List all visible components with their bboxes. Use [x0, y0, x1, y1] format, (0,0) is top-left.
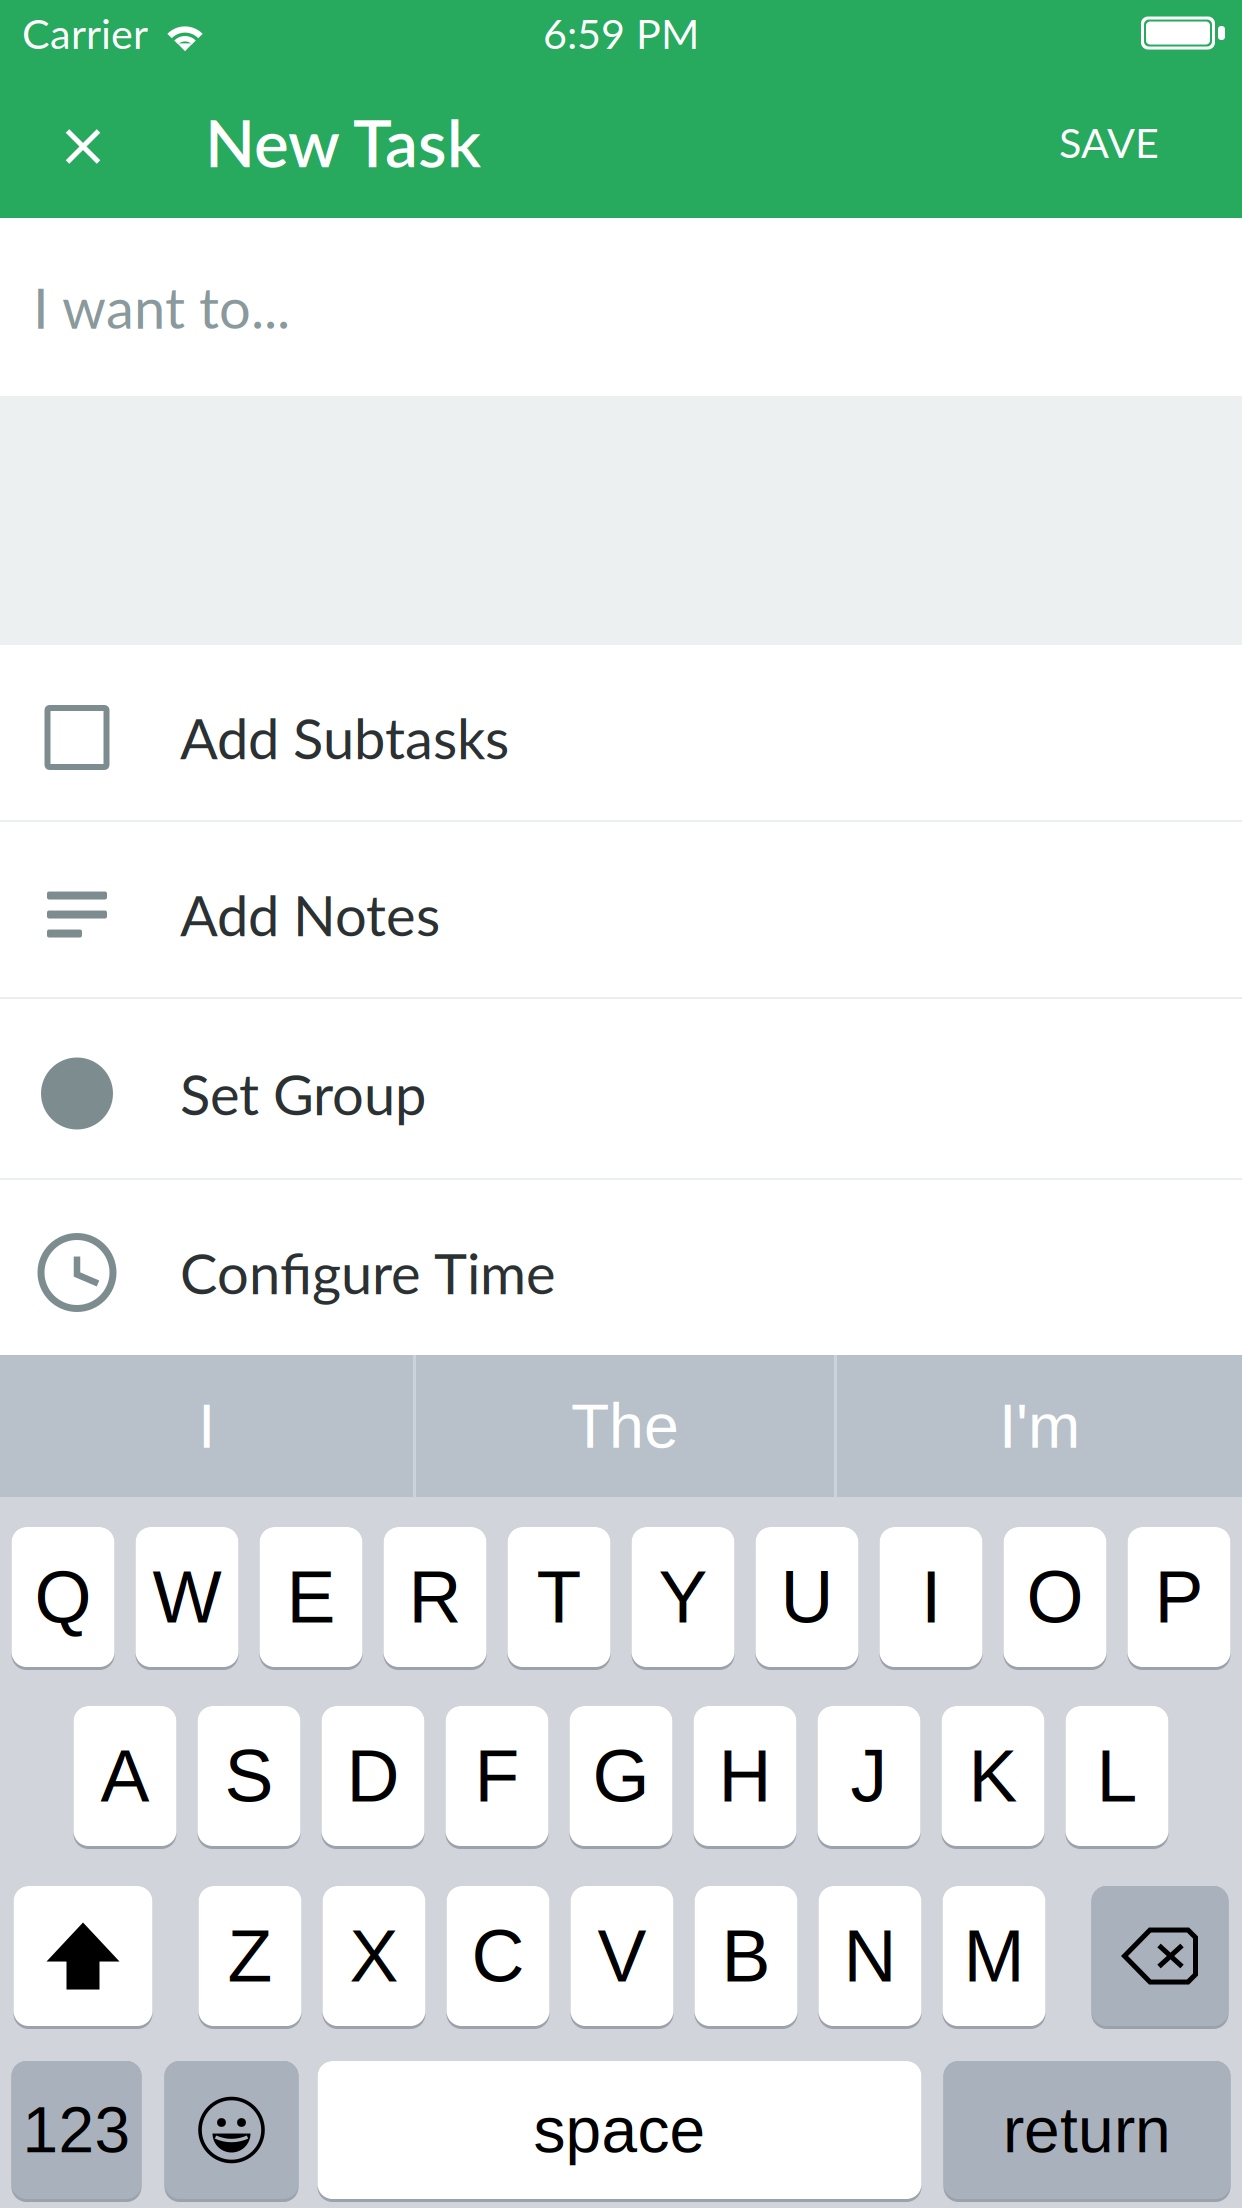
- button[interactable]: Close: [35, 66, 131, 218]
- staticText: 6:59 PM: [543, 8, 699, 58]
- staticText: The: [571, 1391, 679, 1461]
- button[interactable]: M: [942, 1886, 1045, 2029]
- button[interactable]: T: [507, 1527, 610, 1670]
- button[interactable]: Y: [631, 1527, 734, 1670]
- staticText: D: [346, 1735, 399, 1817]
- staticText: Q: [34, 1556, 91, 1638]
- staticText: F: [474, 1735, 519, 1817]
- staticText: Add Subtasks: [180, 704, 509, 771]
- staticText: New Task: [205, 103, 481, 181]
- button[interactable]: O: [1003, 1527, 1106, 1670]
- staticText: S: [224, 1735, 273, 1817]
- staticText: I'm: [999, 1391, 1080, 1461]
- staticText: Z: [227, 1915, 272, 1997]
- staticText: V: [597, 1915, 646, 1997]
- button[interactable]: return: [943, 2061, 1230, 2202]
- staticText: space: [533, 2094, 705, 2166]
- button[interactable]: C: [446, 1886, 549, 2029]
- button[interactable]: I: [0, 1355, 413, 1497]
- button[interactable]: Shift: [13, 1886, 152, 2029]
- staticText: B: [721, 1915, 770, 1997]
- staticText: Set Group: [180, 1060, 426, 1127]
- button[interactable]: S: [197, 1706, 300, 1849]
- button[interactable]: B: [694, 1886, 797, 2029]
- staticText: U: [780, 1556, 833, 1638]
- staticText: O: [1026, 1556, 1083, 1638]
- staticText: M: [963, 1915, 1024, 1997]
- staticText: Add Notes: [180, 881, 440, 948]
- button[interactable]: J: [817, 1706, 920, 1849]
- button[interactable]: G: [569, 1706, 672, 1849]
- button[interactable]: R: [383, 1527, 486, 1670]
- button[interactable]: Add Subtasks: [0, 645, 1242, 820]
- staticText: I: [921, 1556, 941, 1638]
- staticText: C: [471, 1915, 524, 1997]
- staticText: T: [536, 1556, 581, 1638]
- button[interactable]: Q: [11, 1527, 114, 1670]
- staticText: E: [286, 1556, 335, 1638]
- staticText: 123: [22, 2094, 130, 2166]
- button[interactable]: Emoji: [164, 2061, 298, 2202]
- staticText: A: [100, 1735, 149, 1817]
- staticText: K: [968, 1735, 1017, 1817]
- button[interactable]: I: [879, 1527, 982, 1670]
- button[interactable]: E: [259, 1527, 362, 1670]
- staticText: N: [843, 1915, 896, 1997]
- staticText: Carrier: [22, 8, 148, 58]
- staticText: return: [1003, 2094, 1171, 2166]
- button[interactable]: SAVE: [1035, 66, 1183, 218]
- staticText: P: [1154, 1556, 1203, 1638]
- staticText: I: [198, 1391, 215, 1461]
- button[interactable]: N: [818, 1886, 921, 2029]
- staticText: R: [408, 1556, 461, 1638]
- button[interactable]: A: [73, 1706, 176, 1849]
- button[interactable]: space: [317, 2061, 921, 2202]
- staticText: I want to...: [33, 273, 290, 341]
- button[interactable]: K: [941, 1706, 1044, 1849]
- button[interactable]: Z: [198, 1886, 301, 2029]
- staticText: SAVE: [1059, 117, 1159, 167]
- button[interactable]: Add Notes: [0, 822, 1242, 997]
- staticText: Y: [658, 1556, 707, 1638]
- button[interactable]: Delete: [1091, 1886, 1228, 2029]
- button[interactable]: 123: [11, 2061, 141, 2202]
- button[interactable]: W: [135, 1527, 238, 1670]
- button[interactable]: V: [570, 1886, 673, 2029]
- button[interactable]: L: [1065, 1706, 1168, 1849]
- button[interactable]: P: [1127, 1527, 1230, 1670]
- staticText: H: [718, 1735, 771, 1817]
- staticText: Configure Time: [180, 1239, 556, 1306]
- button[interactable]: U: [755, 1527, 858, 1670]
- button[interactable]: Configure Time: [0, 1180, 1242, 1355]
- staticText: W: [152, 1556, 221, 1638]
- staticText: X: [349, 1915, 398, 1997]
- button[interactable]: Set Group: [0, 999, 1242, 1178]
- button[interactable]: H: [693, 1706, 796, 1849]
- staticText: G: [592, 1735, 649, 1817]
- button[interactable]: F: [445, 1706, 548, 1849]
- staticText: J: [850, 1735, 887, 1817]
- button[interactable]: I'm: [837, 1355, 1242, 1497]
- staticText: L: [1096, 1735, 1137, 1817]
- button[interactable]: X: [322, 1886, 425, 2029]
- button[interactable]: D: [321, 1706, 424, 1849]
- button[interactable]: The: [416, 1355, 834, 1497]
